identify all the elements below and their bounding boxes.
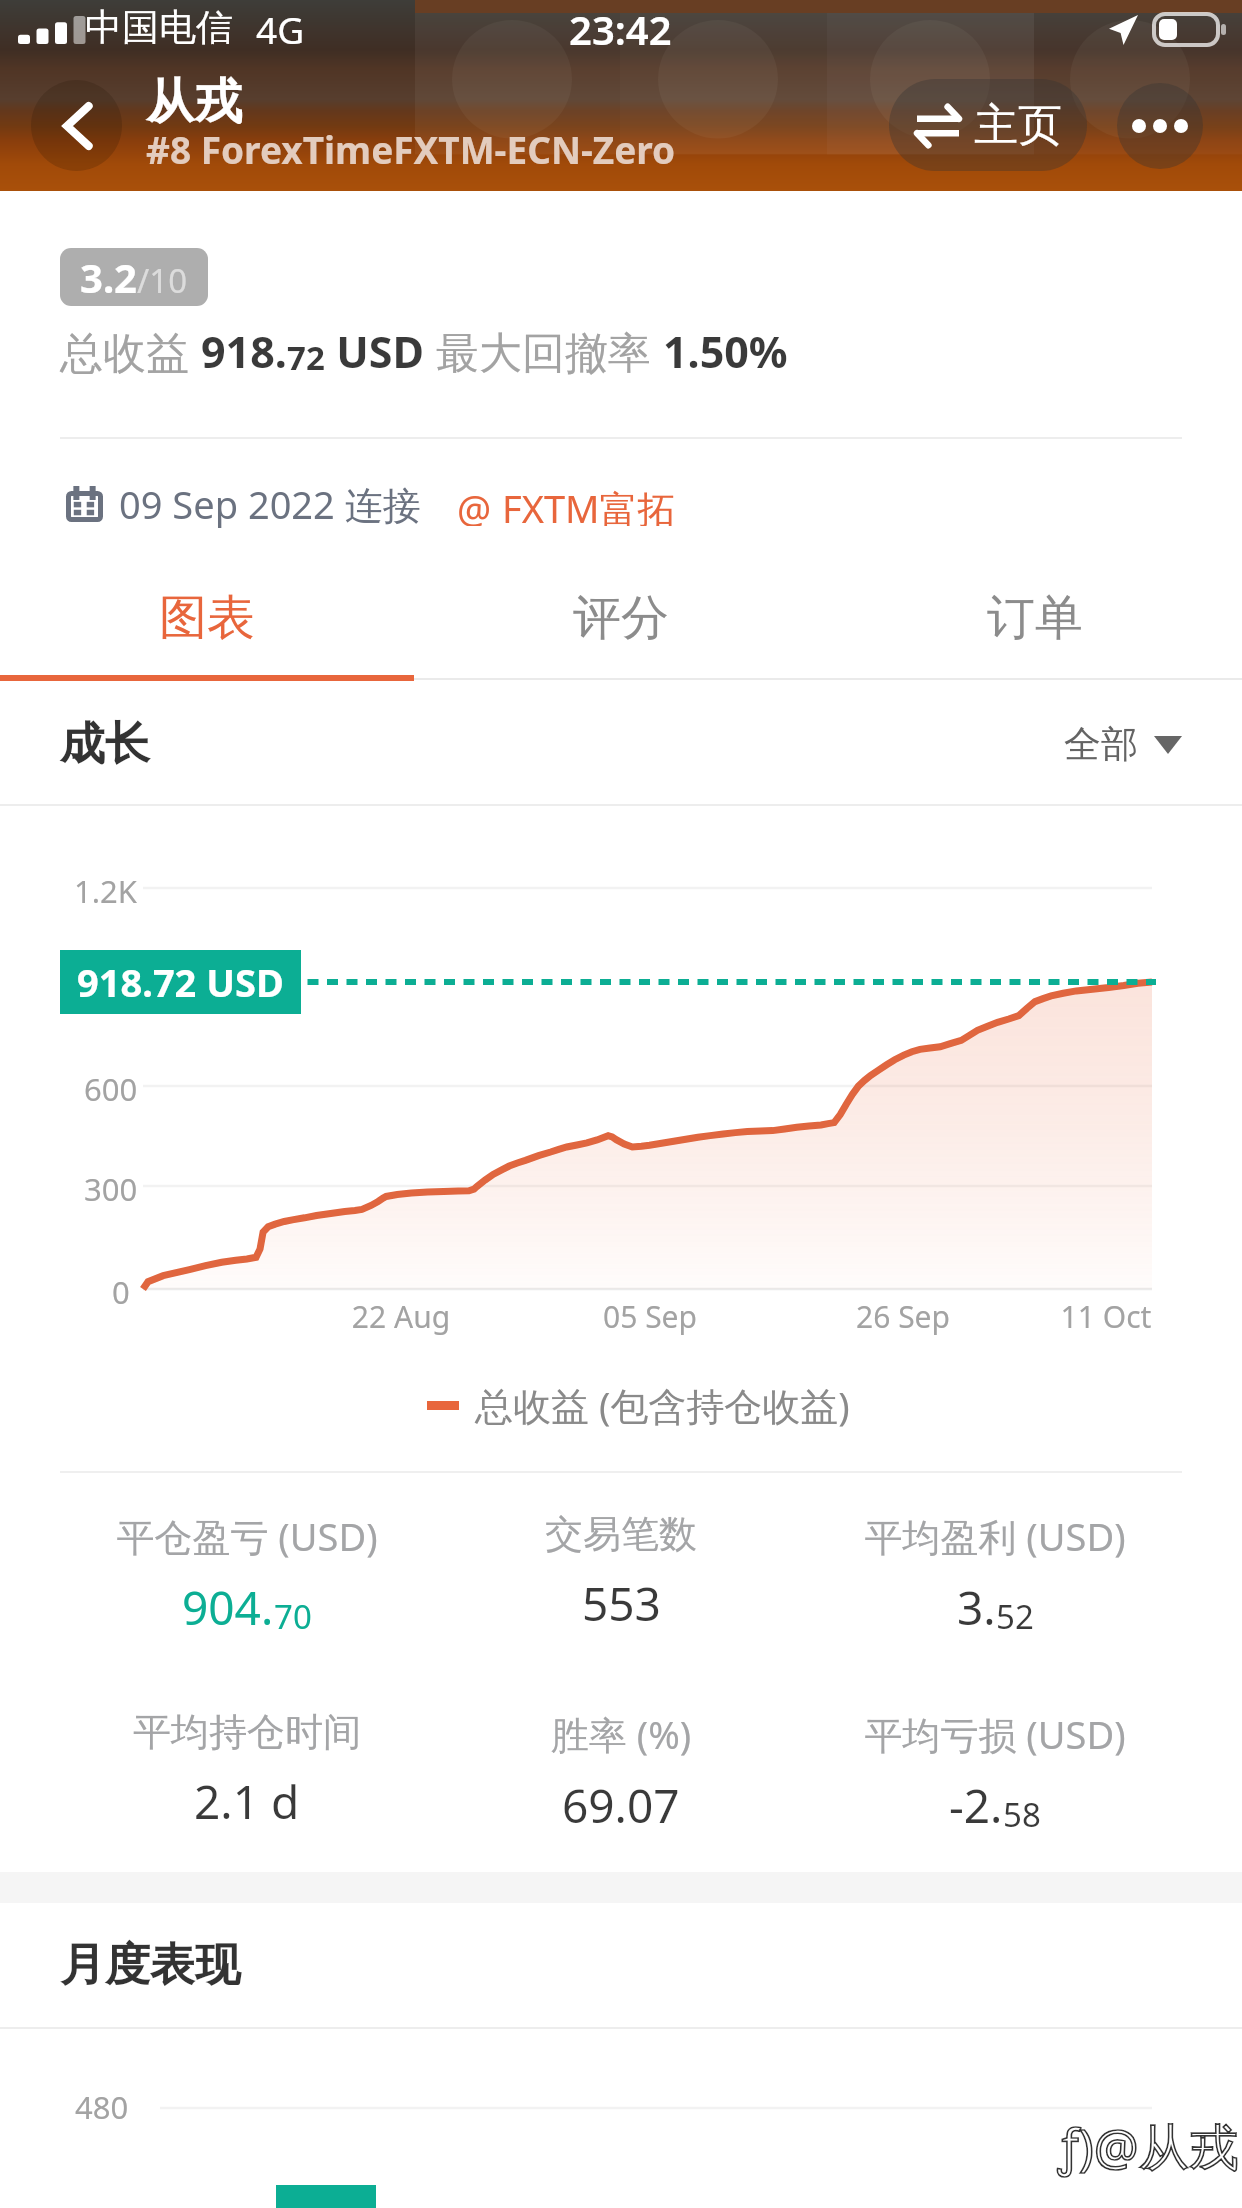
staticText: 1.2K xyxy=(74,870,137,912)
staticText: -2. xyxy=(949,1774,1003,1837)
staticText: 平均亏损 (USD) xyxy=(808,1708,1182,1760)
staticText: 72 xyxy=(287,335,325,380)
staticText: 904. xyxy=(182,1576,274,1639)
staticText: 2.1 d xyxy=(194,1770,300,1833)
staticText: 从戎 xyxy=(146,72,242,132)
staticText: 918. xyxy=(201,322,287,381)
staticText: 300 xyxy=(84,1168,138,1210)
staticText: 总收益 (包含持仓收益) xyxy=(475,1379,850,1431)
staticText: 23:42 xyxy=(569,2,672,56)
staticText: 70 xyxy=(274,1594,312,1639)
staticText: 平仓盈亏 (USD) xyxy=(60,1510,434,1562)
button[interactable]: 订单 xyxy=(828,566,1242,670)
staticText: 69.07 xyxy=(562,1774,680,1837)
staticText: 平均盈利 (USD) xyxy=(808,1510,1182,1562)
staticText: 总收益 xyxy=(60,322,201,381)
staticText: 4G xyxy=(256,4,305,54)
staticText: 3. xyxy=(957,1576,996,1639)
staticText: 最大回撤率 xyxy=(436,322,663,381)
staticText: /10 xyxy=(137,258,188,303)
staticText: 中国电信 xyxy=(85,4,233,51)
staticText: 评分 xyxy=(573,588,669,648)
staticText: 11 Oct xyxy=(1016,1296,1196,1337)
staticText: 胜率 (%) xyxy=(434,1708,808,1760)
staticText: 05 Sep xyxy=(560,1296,740,1337)
staticText: 58 xyxy=(1003,1792,1041,1837)
staticText: 0 xyxy=(112,1271,130,1313)
staticText: FXTM富拓 xyxy=(502,482,676,526)
button[interactable]: 全部 xyxy=(1064,707,1182,782)
staticText: 主页 xyxy=(974,98,1062,153)
staticText: 3.2 xyxy=(80,250,137,304)
staticText: 480 xyxy=(75,2086,129,2128)
staticText: 52 xyxy=(996,1594,1034,1639)
staticText: 600 xyxy=(84,1068,138,1110)
button[interactable]: 图表 xyxy=(0,566,414,670)
staticText: 918.72 USD xyxy=(77,956,284,1008)
staticText: 交易笔数 xyxy=(434,1510,808,1558)
button[interactable]: 评分 xyxy=(414,566,828,670)
staticText: 图表 xyxy=(159,588,255,648)
staticText: 22 Aug xyxy=(311,1296,491,1337)
staticText: 553 xyxy=(582,1572,661,1635)
staticText: 全部 xyxy=(1064,721,1138,768)
staticText: ƒ)@从戎 xyxy=(1058,2112,1239,2180)
button[interactable]: Back xyxy=(31,80,122,171)
staticText: 月度表现 xyxy=(60,1937,240,1994)
staticText: 成长 xyxy=(60,716,150,773)
staticText: 09 Sep 2022 连接 xyxy=(119,478,421,530)
button[interactable]: @ xyxy=(457,476,676,532)
button[interactable]: More options xyxy=(1117,83,1203,169)
staticText: USD xyxy=(325,322,436,381)
button[interactable]: 主页 xyxy=(889,79,1087,171)
staticText: 平均持仓时间 xyxy=(60,1708,434,1756)
staticText: @ xyxy=(457,482,492,526)
staticText: 1.50% xyxy=(663,322,788,381)
staticText: #8 ForexTimeFXTM-ECN-Zero xyxy=(146,124,676,174)
staticText: 订单 xyxy=(987,588,1083,648)
staticText: 26 Sep xyxy=(813,1296,993,1337)
